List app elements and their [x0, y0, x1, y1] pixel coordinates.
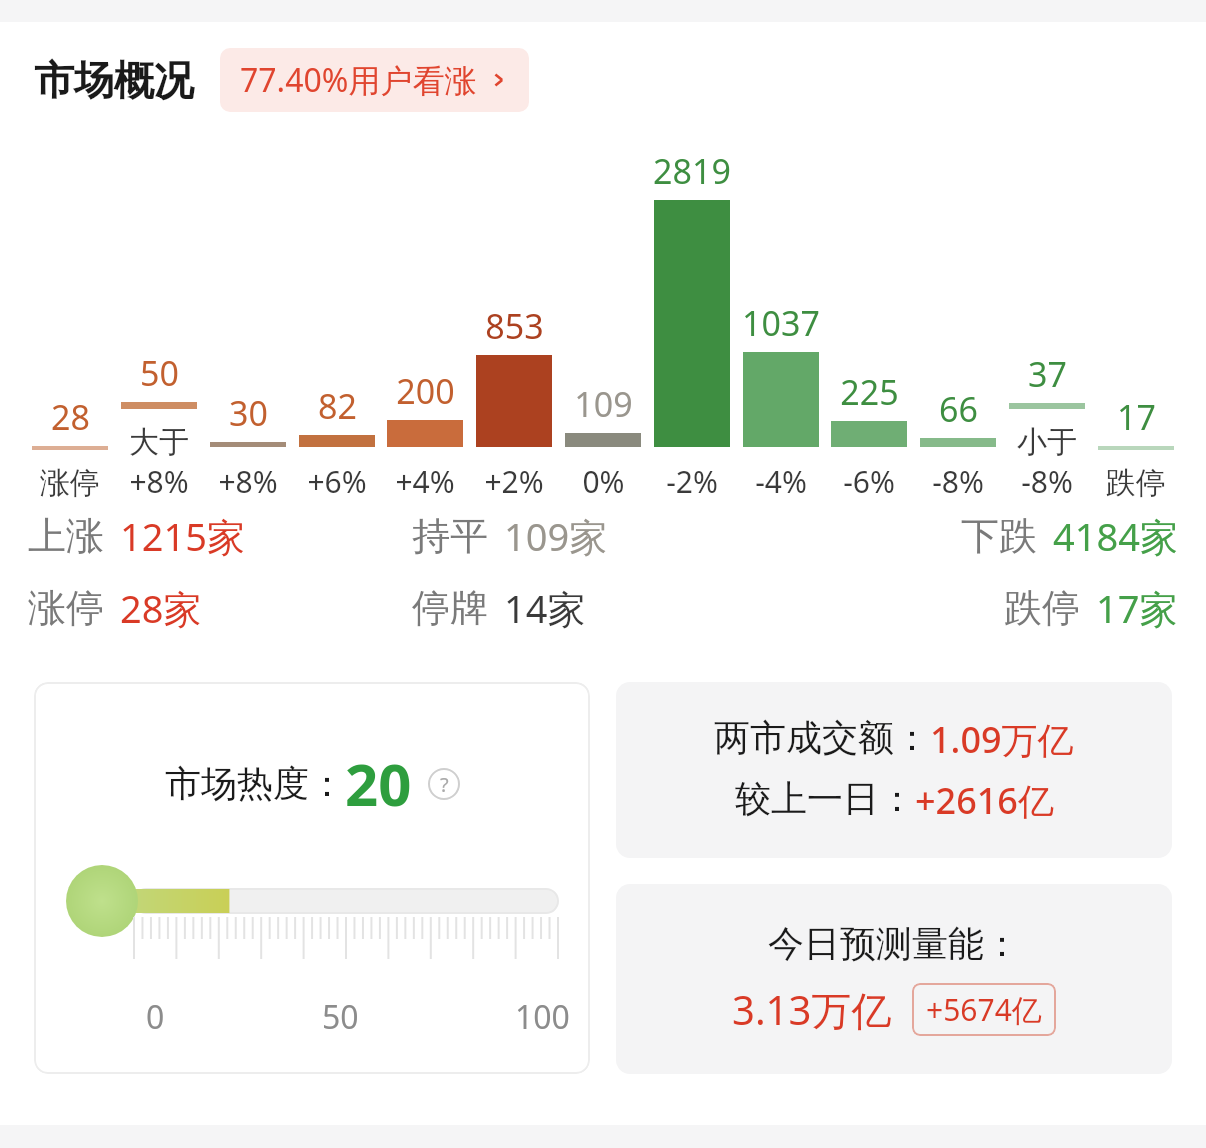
staticText: -8% — [932, 461, 984, 502]
staticText: +2616亿 — [915, 776, 1054, 825]
button[interactable]: 市场热度： — [34, 682, 590, 1074]
staticText: 50 — [140, 350, 179, 396]
button[interactable]: 两市成交额： — [616, 682, 1172, 858]
button[interactable]: 帮助 — [428, 768, 460, 800]
staticText: 较上一日： — [735, 776, 915, 821]
staticText: -8% — [1021, 461, 1073, 502]
staticText: 小于 — [1017, 423, 1077, 461]
staticText: 20 — [345, 744, 412, 823]
staticText: 两市成交额： — [714, 715, 930, 760]
staticText: 上涨 — [28, 512, 104, 560]
staticText: +4% — [395, 461, 455, 502]
staticText: 0 — [146, 995, 165, 1039]
staticText: +5674亿 — [926, 989, 1042, 1030]
staticText: 今日预测量能： — [768, 921, 1020, 966]
staticText: 109家 — [504, 510, 608, 562]
staticText: ? — [440, 771, 449, 798]
staticText: +8% — [129, 461, 189, 502]
staticText: 17 — [1117, 394, 1156, 440]
staticText: +8% — [218, 461, 278, 502]
staticText: 200 — [396, 368, 455, 414]
staticText: 66 — [939, 386, 978, 432]
staticText: +6% — [307, 461, 367, 502]
staticText: 109 — [574, 381, 633, 427]
staticText: 1.09万亿 — [930, 715, 1074, 764]
staticText: 大于 — [129, 423, 189, 461]
staticText: -6% — [843, 461, 895, 502]
staticText: 14家 — [504, 582, 586, 634]
staticText: 市场热度： — [165, 761, 345, 806]
staticText: 17家 — [1096, 582, 1178, 634]
staticText: 853 — [485, 303, 544, 349]
staticText: 跌停 — [1004, 584, 1080, 632]
staticText: 30 — [229, 390, 268, 436]
staticText: 1037 — [742, 300, 820, 346]
button[interactable]: 今日预测量能： — [616, 884, 1172, 1074]
staticText: 停牌 — [412, 584, 488, 632]
staticText: 77.40%用户看涨 — [240, 58, 477, 102]
staticText: 82 — [318, 383, 357, 429]
staticText: 28 — [51, 394, 90, 440]
staticText: 跌停 — [1106, 464, 1166, 502]
staticText: 2819 — [653, 148, 731, 194]
staticText: 37 — [1028, 351, 1067, 397]
staticText: 3.13万亿 — [732, 982, 892, 1037]
staticText: -4% — [755, 461, 807, 502]
staticText: 市场概况 — [34, 55, 194, 105]
staticText: 涨停 — [40, 464, 100, 502]
staticText: 225 — [840, 369, 899, 415]
staticText: 4184家 — [1053, 510, 1178, 562]
staticText: 持平 — [412, 512, 488, 560]
staticText: -2% — [666, 461, 718, 502]
staticText: 50 — [322, 995, 359, 1039]
staticText: +2% — [484, 461, 544, 502]
staticText: 涨停 — [28, 584, 104, 632]
staticText: 下跌 — [961, 512, 1037, 560]
staticText: 0% — [582, 461, 625, 502]
button[interactable]: 77.40%用户看涨 — [220, 48, 529, 112]
staticText: 28家 — [120, 582, 202, 634]
staticText: 1215家 — [120, 510, 245, 562]
staticText: 100 — [515, 995, 570, 1039]
